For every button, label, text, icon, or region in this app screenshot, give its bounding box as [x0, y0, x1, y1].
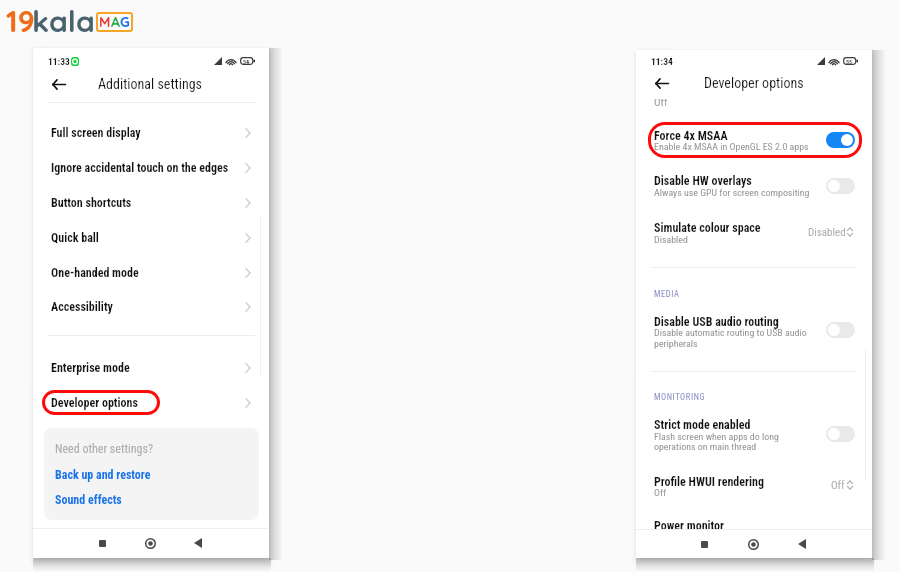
- staticText: Flash screen when apps do long: [654, 431, 779, 443]
- staticText: Power monitor: [654, 519, 725, 533]
- staticText: 19: [6, 2, 35, 38]
- button[interactable]: One-handed mode: [33, 258, 269, 288]
- staticText: Profile HWUI rendering: [654, 475, 764, 489]
- button[interactable]: Accessibility: [33, 292, 269, 322]
- button[interactable]: [636, 411, 872, 455]
- staticText: Force 4x MSAA: [654, 129, 728, 143]
- button[interactable]: Developer options: [33, 388, 269, 418]
- button[interactable]: Back: [650, 71, 674, 95]
- staticText: One-handed mode: [51, 266, 237, 280]
- button[interactable]: Button shortcuts: [33, 188, 269, 218]
- staticText: peripherals: [654, 338, 698, 350]
- button[interactable]: [636, 308, 872, 352]
- staticText: G: [120, 13, 130, 31]
- button[interactable]: Home: [742, 533, 764, 555]
- staticText: Button shortcuts: [51, 196, 237, 210]
- staticText: M: [99, 13, 111, 31]
- staticText: 54: [243, 58, 250, 65]
- staticText: Off: [654, 96, 668, 109]
- staticText: Additional settings: [98, 76, 202, 92]
- button[interactable]: Toggle: [826, 322, 855, 338]
- staticText: Quick ball: [51, 231, 237, 245]
- staticText: Off: [654, 487, 667, 499]
- button[interactable]: Ignore accidental touch on the edges: [33, 153, 269, 183]
- staticText: Ignore accidental touch on the edges: [51, 161, 237, 175]
- staticText: kala: [32, 2, 95, 38]
- staticText: A: [111, 13, 120, 31]
- button[interactable]: Back: [47, 72, 71, 96]
- staticText: Disable automatic routing to USB audio: [654, 327, 807, 339]
- staticText: 55: [846, 58, 853, 65]
- staticText: Disabled: [808, 226, 846, 239]
- button[interactable]: [636, 168, 872, 202]
- staticText: Accessibility: [51, 300, 237, 314]
- button[interactable]: Back: [187, 532, 209, 554]
- staticText: Developer options: [51, 396, 237, 410]
- staticText: 11:34: [651, 56, 673, 67]
- staticText: Off: [831, 479, 845, 492]
- button[interactable]: Back up and restore: [44, 462, 259, 486]
- staticText: Simulate colour space: [654, 221, 761, 235]
- staticText: Enable 4x MSAA in OpenGL ES 2.0 apps: [654, 141, 809, 153]
- staticText: Full screen display: [51, 126, 237, 140]
- button[interactable]: Toggle: [826, 132, 855, 148]
- button[interactable]: Enterprise mode: [33, 353, 269, 383]
- button[interactable]: Recents: [91, 532, 113, 554]
- button[interactable]: [636, 120, 872, 156]
- staticText: Developer options: [704, 75, 804, 91]
- button[interactable]: Back: [791, 533, 813, 555]
- button[interactable]: Home: [139, 532, 161, 554]
- staticText: Enterprise mode: [51, 361, 237, 375]
- button[interactable]: Full screen display: [33, 118, 269, 148]
- staticText: Strict mode enabled: [654, 418, 751, 432]
- staticText: operations on main thread: [654, 441, 757, 453]
- button[interactable]: Toggle: [826, 426, 855, 442]
- staticText: Back up and restore: [55, 468, 151, 482]
- staticText: MEDIA: [654, 289, 680, 299]
- button[interactable]: [636, 470, 872, 502]
- button[interactable]: [636, 216, 872, 248]
- staticText: Disable HW overlays: [654, 174, 752, 188]
- staticText: Always use GPU for screen compositing: [654, 187, 810, 199]
- staticText: Disabled: [654, 234, 688, 246]
- staticText: Disable USB audio routing: [654, 315, 779, 329]
- staticText: MONITORING: [654, 392, 706, 402]
- button[interactable]: Toggle: [826, 178, 855, 194]
- staticText: 11:33: [48, 56, 70, 67]
- button[interactable]: Quick ball: [33, 223, 269, 253]
- staticText: Sound effects: [55, 493, 122, 507]
- staticText: Need other settings?: [55, 442, 154, 456]
- button[interactable]: Sound effects: [44, 487, 259, 511]
- button[interactable]: Recents: [693, 533, 715, 555]
